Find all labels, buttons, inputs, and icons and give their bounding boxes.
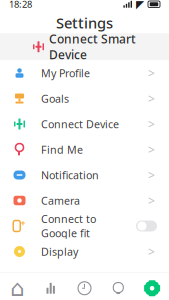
button[interactable]: Statistics [34, 273, 68, 300]
button[interactable]: My Profile [0, 60, 169, 86]
staticText: > [148, 90, 155, 106]
button[interactable]: Camera [0, 188, 169, 213]
staticText: > [148, 141, 155, 157]
button[interactable]: Home [0, 273, 34, 300]
staticText: > [148, 65, 155, 81]
staticText: > [148, 192, 155, 208]
staticText: 18:28 [9, 0, 32, 10]
button[interactable]: Notification [0, 162, 169, 188]
button[interactable]: Display [0, 239, 169, 264]
staticText: Display [41, 244, 78, 259]
button[interactable]: Settings [135, 273, 169, 300]
button[interactable]: Connect Smart Device [0, 33, 169, 60]
staticText: My Profile [41, 66, 90, 80]
staticText: > [148, 116, 155, 132]
button[interactable]: Goals [0, 86, 169, 111]
staticText: + [21, 218, 26, 229]
button[interactable]: + [0, 213, 169, 239]
staticText: Find Me [41, 142, 83, 157]
button[interactable]: Find Me [0, 137, 169, 162]
button[interactable]: Connect Device [0, 111, 169, 137]
button[interactable]: Alarm [68, 273, 101, 300]
button[interactable]: Notifications [101, 273, 135, 300]
staticText: Camera [41, 193, 80, 208]
staticText: Notification [41, 168, 99, 182]
staticText: Connect Smart Device [49, 31, 136, 63]
staticText: Goals [41, 91, 69, 106]
staticText: Settings [56, 13, 113, 32]
staticText: > [148, 243, 155, 259]
staticText: ⌂ [10, 275, 24, 300]
staticText: > [148, 167, 155, 183]
staticText: ◤ [136, 0, 144, 10]
staticText: Connect Device [41, 117, 119, 131]
staticText: Connect to Google fit [41, 212, 96, 240]
